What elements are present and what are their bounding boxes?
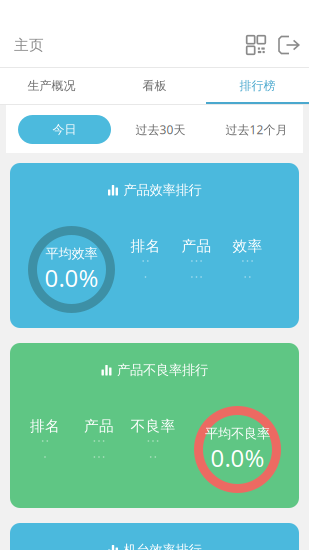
staticText: 机台效率排行 [123,542,201,550]
button[interactable]: 看板 [103,68,206,104]
staticText: 排名 [130,237,160,255]
staticText: 过去12个月 [225,121,287,137]
staticText: 0.0% [44,262,98,294]
staticText: 产品不良率排行 [117,362,208,378]
button[interactable]: 退出登录 [276,32,302,58]
button[interactable]: 扫码 [241,32,271,58]
button[interactable]: 过去30天 [114,115,207,144]
staticText: 产品 [84,417,114,435]
staticText: 主页 [14,36,44,54]
staticText: 产品 [181,237,211,255]
staticText: 排名 [30,417,60,435]
staticText: 不良率 [130,417,175,435]
staticText: 0.0% [210,442,264,474]
staticText: 产品效率排行 [123,182,201,198]
button[interactable]: 今日 [18,115,111,144]
staticText: 今日 [52,122,76,137]
button[interactable]: 过去12个月 [210,115,303,144]
staticText: 过去30天 [135,121,185,137]
staticText: 效率 [232,237,262,255]
staticText: 平均不良率 [205,425,270,442]
staticText: 排行榜 [239,78,275,93]
staticText: 生产概况 [27,78,75,93]
staticText: 看板 [142,78,166,93]
button[interactable]: 生产概况 [0,68,103,104]
staticText: 平均效率 [45,245,97,262]
button[interactable]: 排行榜 [206,68,309,104]
